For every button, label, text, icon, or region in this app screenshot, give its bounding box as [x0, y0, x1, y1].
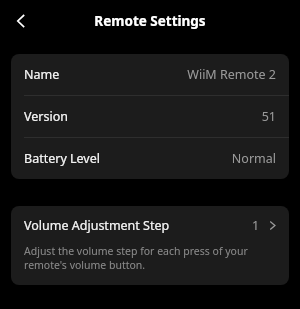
staticText: Name	[24, 66, 60, 83]
staticText: Volume Adjustment Step	[24, 217, 170, 234]
staticText: Remote Settings	[94, 12, 206, 30]
staticText: WiiM Remote 2	[187, 66, 276, 83]
button[interactable]: Volume Adjustment Step	[11, 206, 289, 244]
staticText: Version	[24, 108, 68, 125]
button[interactable]: Back	[6, 6, 36, 36]
staticText: 1	[252, 217, 260, 234]
button[interactable]: Version	[11, 96, 289, 137]
staticText: Normal	[231, 150, 276, 167]
staticText: Battery Level	[24, 150, 100, 167]
staticText: Adjust the volume step for each press of…	[24, 244, 273, 272]
staticText: 51	[261, 108, 276, 125]
button[interactable]: Name	[11, 54, 289, 95]
button[interactable]: Battery Level	[11, 138, 289, 179]
